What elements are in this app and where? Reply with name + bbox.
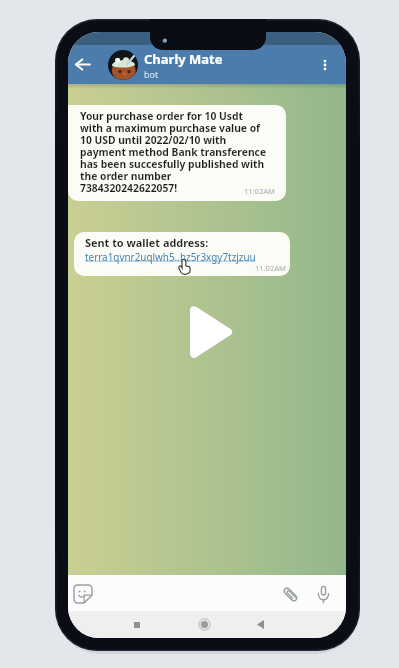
button[interactable]: Record voice message bbox=[312, 583, 335, 606]
staticText: 11.02AM bbox=[255, 263, 286, 273]
button[interactable]: Sent to wallet address: bbox=[74, 232, 290, 276]
button[interactable]: Stickers bbox=[71, 582, 94, 605]
staticText: 11:02AM bbox=[244, 186, 275, 196]
staticText: bot bbox=[144, 68, 159, 80]
button[interactable]: Your purchase order for 10 Usdt with a m… bbox=[68, 105, 286, 201]
staticText: terra1qvnr2uqlwh5..hz5r3xgy7tzjzuu bbox=[85, 250, 256, 263]
staticText: Your purchase order for 10 Usdt with a m… bbox=[80, 109, 275, 195]
staticText: Sent to wallet address: bbox=[85, 235, 209, 250]
button[interactable]: Recent apps bbox=[126, 614, 147, 635]
button[interactable]: Attach file bbox=[279, 583, 302, 606]
staticText: Charly Mate bbox=[144, 50, 223, 68]
button[interactable]: Back bbox=[250, 614, 271, 635]
button[interactable]: More options bbox=[314, 54, 336, 76]
button[interactable]: Profile picture bbox=[108, 50, 138, 80]
button[interactable]: Home bbox=[194, 614, 215, 635]
button[interactable]: Back bbox=[71, 53, 94, 76]
